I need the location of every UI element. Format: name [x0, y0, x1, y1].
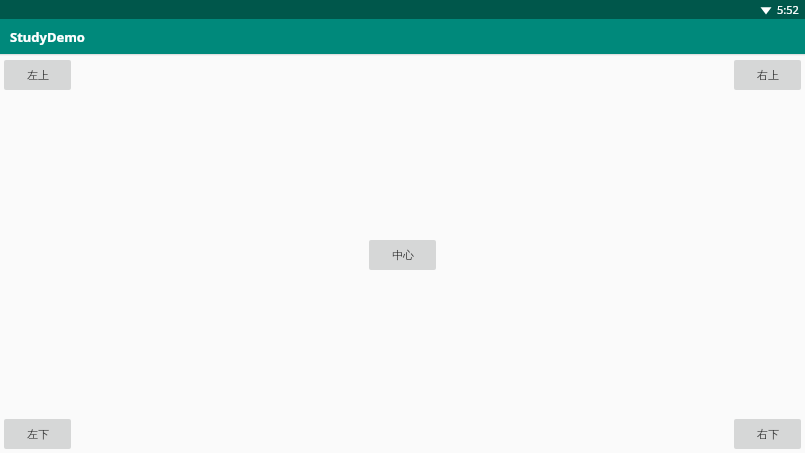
button[interactable]: 右下: [734, 419, 801, 449]
button[interactable]: 左上: [4, 60, 71, 90]
staticText: StudyDemo: [10, 28, 85, 46]
button[interactable]: 左下: [4, 419, 71, 449]
staticText: 左上: [27, 68, 49, 82]
staticText: 右下: [757, 427, 779, 441]
staticText: 中心: [392, 248, 414, 262]
staticText: 5:52: [777, 2, 799, 17]
button[interactable]: 右上: [734, 60, 801, 90]
other: Wi-Fi: [760, 4, 772, 15]
staticText: 右上: [757, 68, 779, 82]
button[interactable]: 中心: [369, 240, 436, 270]
staticText: 左下: [27, 427, 49, 441]
